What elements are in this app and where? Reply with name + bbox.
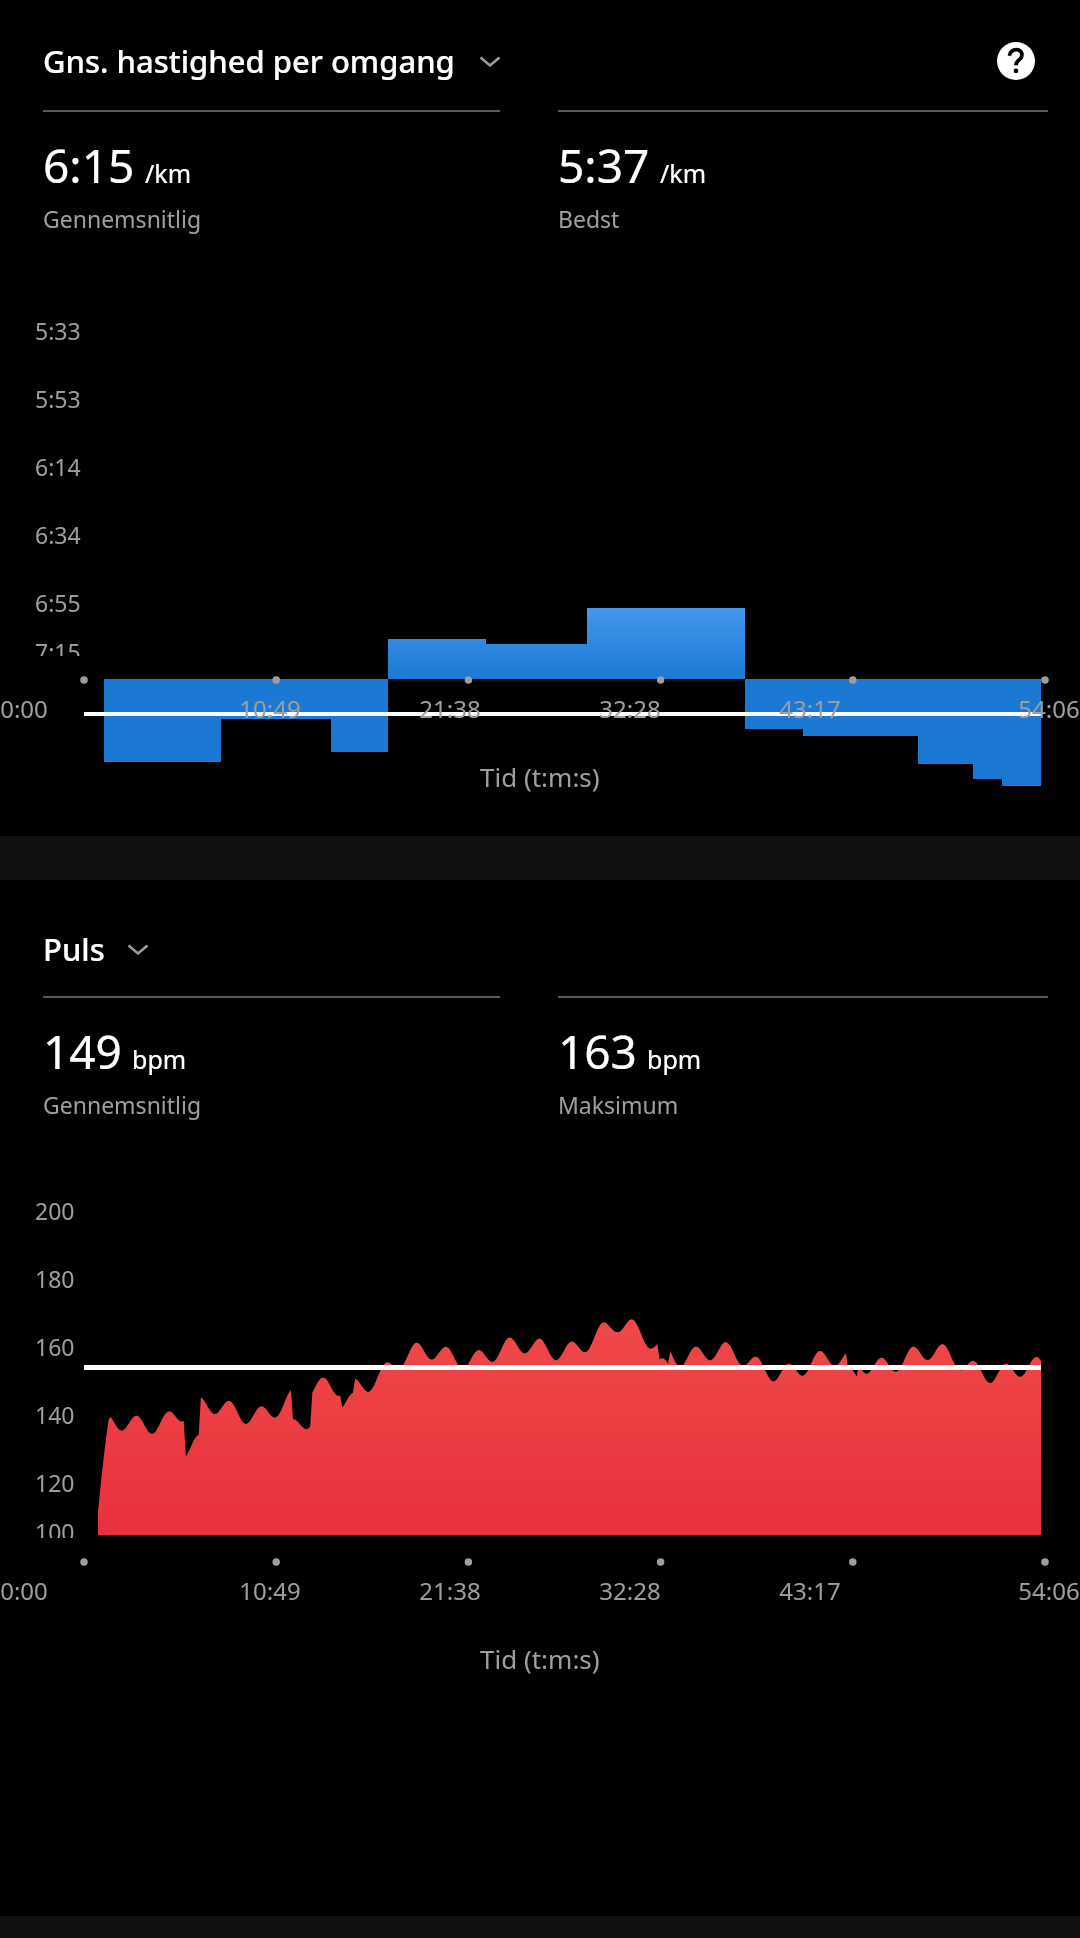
staticText: 180 [35, 1263, 75, 1294]
staticText: 6:34 [35, 519, 81, 550]
staticText: 7:15 [35, 636, 81, 656]
staticText: 54:06 [1018, 692, 1080, 725]
staticText: 6:55 [35, 587, 81, 618]
staticText: 5:53 [35, 383, 81, 414]
staticText: Gns. hastighed per omgang [43, 40, 455, 82]
button[interactable]: Puls-graf [0, 1166, 1080, 1538]
staticText: /km [660, 156, 707, 190]
staticText: 32:28 [599, 1574, 661, 1607]
staticText: 43:17 [779, 692, 841, 725]
staticText: 200 [35, 1195, 75, 1226]
staticText: 5:33 [35, 315, 81, 346]
staticText: Tid (t:m:s) [480, 759, 600, 794]
button[interactable]: Tempo-graf [0, 284, 1080, 656]
button[interactable]: Hjælp [990, 35, 1042, 87]
staticText: 6:14 [35, 451, 81, 482]
staticText: Maksimum [558, 1089, 679, 1120]
staticText: 140 [35, 1399, 75, 1430]
button[interactable]: Puls [0, 918, 1080, 980]
staticText: Bedst [558, 203, 620, 234]
staticText: 10:49 [239, 692, 301, 725]
staticText: 10:49 [239, 1574, 301, 1607]
staticText: 32:28 [599, 692, 661, 725]
staticText: 100 [35, 1516, 75, 1538]
staticText: bpm [132, 1042, 187, 1076]
staticText: Tid (t:m:s) [480, 1641, 600, 1676]
staticText: 21:38 [419, 1574, 481, 1607]
staticText: 5:37 [558, 134, 650, 197]
staticText: 149 [43, 1020, 122, 1083]
staticText: 120 [35, 1467, 75, 1498]
staticText: bpm [647, 1042, 702, 1076]
button[interactable]: Gns. hastighed per omgang [0, 30, 990, 92]
staticText: 21:38 [419, 692, 481, 725]
staticText: Gennemsnitlig [43, 203, 202, 234]
staticText: 43:17 [779, 1574, 841, 1607]
staticText: 6:15 [43, 134, 135, 197]
staticText: 163 [558, 1020, 637, 1083]
staticText: /km [145, 156, 192, 190]
staticText: Puls [43, 928, 105, 970]
staticText: 160 [35, 1331, 75, 1362]
staticText: Gennemsnitlig [43, 1089, 202, 1120]
staticText: 54:06 [1018, 1574, 1080, 1607]
staticText: 0:00 [0, 692, 48, 725]
staticText: 0:00 [0, 1574, 48, 1607]
